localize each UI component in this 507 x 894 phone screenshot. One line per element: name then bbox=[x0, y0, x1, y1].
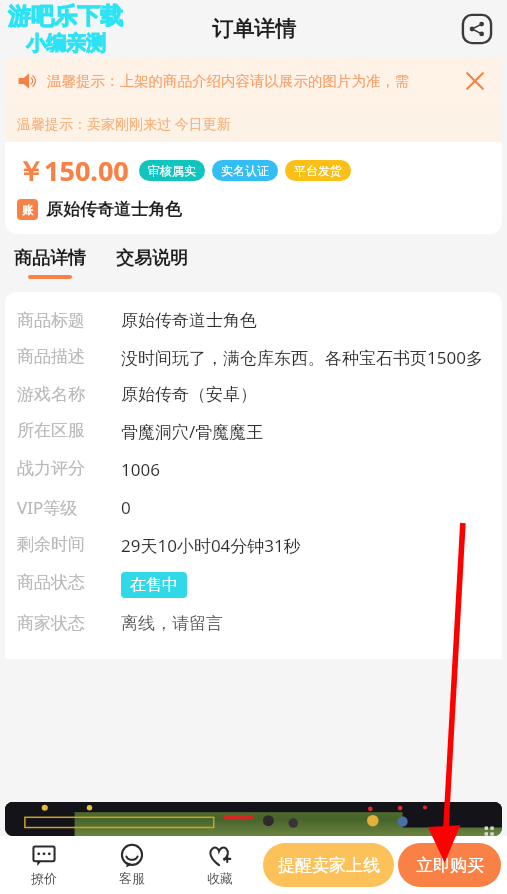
staticText: 离线，请留言 bbox=[121, 613, 223, 634]
button[interactable]: 商品详情 bbox=[12, 247, 88, 279]
staticText: 商品标题 bbox=[17, 310, 117, 331]
staticText: 交易说明 bbox=[116, 247, 188, 270]
staticText: 原始传奇（安卓） bbox=[121, 384, 257, 405]
staticText: 平台发货 bbox=[294, 163, 342, 178]
staticText: 0 bbox=[121, 496, 131, 519]
staticText: 没时间玩了，满仓库东西。各种宝石书页1500多 bbox=[121, 346, 483, 369]
staticText: 剩余时间 bbox=[17, 534, 117, 555]
staticText: 商品状态 bbox=[17, 572, 117, 593]
staticText: 1006 bbox=[121, 458, 160, 481]
staticText: 客服 bbox=[119, 870, 145, 886]
button[interactable]: Share bbox=[461, 13, 493, 45]
staticText: 实名认证 bbox=[221, 163, 269, 178]
staticText: 原始传奇道士角色 bbox=[46, 199, 182, 220]
button[interactable]: 立即购买 bbox=[398, 843, 501, 887]
staticText: 游吧乐下载 bbox=[8, 2, 123, 31]
staticText: 战力评分 bbox=[17, 458, 117, 479]
staticText: 收藏 bbox=[207, 870, 233, 886]
staticText: VIP等级 bbox=[17, 496, 117, 519]
staticText: 订单详情 bbox=[212, 16, 296, 42]
staticText: 骨魔洞穴/骨魔魔王 bbox=[121, 420, 264, 443]
button[interactable]: 交易说明 bbox=[114, 243, 190, 283]
staticText: 提醒卖家上线 bbox=[278, 855, 380, 876]
button[interactable]: Close bbox=[460, 66, 490, 96]
staticText: 商品描述 bbox=[17, 346, 117, 367]
staticText: 原始传奇道士角色 bbox=[121, 310, 257, 331]
staticText: 账 bbox=[22, 203, 33, 217]
staticText: 商品详情 bbox=[14, 247, 86, 270]
button[interactable]: 撩价 bbox=[0, 836, 88, 894]
staticText: 立即购买 bbox=[416, 855, 484, 876]
staticText: 商家状态 bbox=[17, 613, 117, 634]
button[interactable]: 温馨提示：上架的商品介绍内容请以展示的图片为准，需 bbox=[5, 58, 502, 104]
button[interactable]: 收藏 bbox=[176, 836, 263, 894]
button[interactable]: 客服 bbox=[88, 836, 176, 894]
staticText: 审核属实 bbox=[148, 163, 196, 178]
staticText: 小编亲测 bbox=[26, 31, 106, 56]
staticText: 温馨提示：卖家刚刚来过 今日更新 bbox=[17, 114, 231, 133]
staticText: 游戏名称 bbox=[17, 384, 117, 405]
staticText: 在售中 bbox=[130, 575, 178, 595]
staticText: 所在区服 bbox=[17, 420, 117, 441]
staticText: ￥150.00 bbox=[17, 152, 129, 189]
staticText: 29天10小时04分钟31秒 bbox=[121, 534, 301, 557]
staticText: 撩价 bbox=[31, 870, 57, 886]
staticText: 温馨提示：上架的商品介绍内容请以展示的图片为准，需 bbox=[47, 72, 460, 90]
button[interactable]: 提醒卖家上线 bbox=[263, 843, 394, 887]
